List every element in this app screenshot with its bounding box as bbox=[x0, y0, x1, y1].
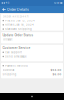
staticText: Shipping bbox=[2, 73, 16, 76]
staticText: 4G bbox=[6, 1, 10, 4]
staticText: Order Details bbox=[7, 7, 29, 12]
button[interactable]: Call support bbox=[2, 51, 61, 54]
button[interactable]: Back bbox=[1, 6, 7, 13]
staticText: Call support bbox=[5, 51, 22, 54]
staticText: In transit bbox=[2, 38, 12, 41]
staticText: Customer Service bbox=[2, 46, 30, 50]
staticText: 12:30 bbox=[54, 1, 60, 4]
staticText: Subtotal bbox=[2, 68, 14, 71]
button[interactable]: Send a message bbox=[2, 55, 61, 58]
staticText: Placed Jan 12, 2024 bbox=[5, 19, 35, 22]
staticText: $54.00 bbox=[50, 68, 61, 71]
staticText: ORDER #A1023-4471 bbox=[2, 15, 28, 18]
staticText: $6.00 bbox=[52, 73, 61, 76]
staticText: Update Order Status bbox=[2, 33, 33, 37]
staticText: Payment method bbox=[5, 64, 28, 67]
staticText: Send a message bbox=[5, 55, 27, 58]
staticText: Standard Shipping bbox=[5, 27, 32, 31]
staticText: Arrives Jan 18, 2024 bbox=[5, 23, 34, 26]
